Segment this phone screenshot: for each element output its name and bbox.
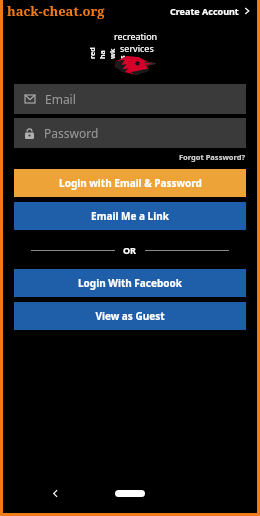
staticText: redhawks [88, 47, 128, 59]
button[interactable]: Login With Facebook [14, 269, 246, 297]
staticText: Password [44, 125, 99, 141]
button[interactable]: Home [115, 490, 145, 497]
staticText: OR [123, 244, 137, 256]
staticText: Create Account [170, 5, 239, 17]
button[interactable]: Email [14, 84, 246, 114]
button[interactable]: Email Me a Link [14, 202, 246, 230]
button[interactable]: Forgot Password? [169, 148, 257, 165]
button[interactable]: Create Account [162, 2, 257, 20]
staticText: Login With Facebook [78, 276, 182, 290]
button[interactable]: Back [47, 485, 63, 501]
staticText: hack-cheat.org [7, 2, 105, 20]
staticText: Login with Email & Password [59, 176, 202, 190]
staticText: recreation [114, 30, 158, 42]
staticText: View as Guest [95, 309, 165, 323]
staticText: Email Me a Link [91, 209, 169, 223]
button[interactable]: Login with Email & Password [14, 169, 246, 197]
staticText: services [120, 42, 154, 54]
staticText: Email [45, 91, 76, 107]
button[interactable]: View as Guest [14, 302, 246, 330]
button[interactable]: Password [14, 118, 246, 148]
